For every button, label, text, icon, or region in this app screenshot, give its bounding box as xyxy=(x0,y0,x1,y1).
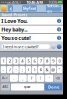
button[interactable]: 2 xyxy=(7,57,12,64)
button[interactable]: ) xyxy=(32,66,37,73)
staticText: 0 xyxy=(58,58,60,63)
staticText: ; xyxy=(22,67,23,72)
staticText: ‹ xyxy=(9,4,11,13)
staticText: 100% xyxy=(48,0,57,5)
staticText: 6 xyxy=(34,58,36,63)
button[interactable]: ⌫ xyxy=(54,75,62,82)
button[interactable]: ' xyxy=(45,75,53,82)
button[interactable]: 3 xyxy=(13,57,19,64)
staticText: ! xyxy=(40,76,41,81)
button[interactable]: " xyxy=(57,66,62,73)
button[interactable]: space xyxy=(11,83,44,90)
staticText: Done xyxy=(48,84,59,90)
button[interactable]: @ xyxy=(50,66,56,73)
staticText: - xyxy=(3,67,4,72)
staticText: 10:46 AM xyxy=(26,0,43,5)
staticText: ⌫ xyxy=(56,77,60,80)
button[interactable]: Settings xyxy=(46,5,63,11)
staticText: @ xyxy=(51,67,55,72)
button[interactable]: 1 xyxy=(1,57,6,64)
button[interactable]: ( xyxy=(26,66,31,73)
button[interactable]: / xyxy=(7,66,12,73)
staticText: Saved Presets xyxy=(1,12,27,17)
staticText: i xyxy=(59,35,60,40)
staticText: 4 xyxy=(21,58,23,63)
button[interactable]: 4 xyxy=(19,57,25,64)
button[interactable]: - xyxy=(1,66,6,73)
button[interactable]: #+= xyxy=(1,75,9,82)
staticText: / xyxy=(9,67,10,72)
staticText: Settings xyxy=(47,3,60,14)
button[interactable]: Done xyxy=(45,83,62,90)
button[interactable]: $ xyxy=(38,66,44,73)
staticText: . xyxy=(13,76,14,81)
staticText: 3 xyxy=(15,58,17,63)
staticText: ? xyxy=(30,76,32,81)
button[interactable]: ? xyxy=(27,75,36,82)
staticText: " xyxy=(58,67,60,72)
staticText: 5 xyxy=(27,58,29,63)
button[interactable]: You so cute! xyxy=(0,34,63,42)
staticText: 7 xyxy=(40,58,42,63)
staticText: 1 xyxy=(2,58,4,63)
staticText: •••oo AT&T xyxy=(1,0,21,5)
button[interactable]: ! xyxy=(36,75,44,82)
button[interactable]: ABC xyxy=(1,83,10,90)
button[interactable]: : xyxy=(13,66,19,73)
button[interactable]: Send xyxy=(57,44,62,49)
staticText: $ xyxy=(40,67,42,72)
staticText: ) xyxy=(34,67,35,72)
staticText: You so cute! xyxy=(1,34,31,41)
staticText: : xyxy=(15,67,16,72)
staticText: I need more cowbell! xyxy=(3,44,39,49)
button[interactable]: 5 xyxy=(26,57,31,64)
staticText: ( xyxy=(28,67,29,72)
staticText: 9 xyxy=(52,58,54,63)
staticText: , xyxy=(22,76,23,81)
staticText: ABC xyxy=(2,85,8,89)
staticText: 8 xyxy=(46,58,48,63)
staticText: & xyxy=(45,67,48,72)
button[interactable]: ; xyxy=(19,66,25,73)
button[interactable]: 9 xyxy=(50,57,56,64)
staticText: ' xyxy=(49,76,50,81)
button[interactable]: Attach xyxy=(51,44,56,49)
button[interactable]: Back xyxy=(7,5,13,11)
button[interactable]: . xyxy=(10,75,18,82)
button[interactable]: SkyText xyxy=(22,5,37,11)
button[interactable]: 8 xyxy=(44,57,50,64)
button[interactable]: 7 xyxy=(38,57,44,64)
button[interactable]: I Love You. xyxy=(0,17,63,25)
button[interactable]: Hey baby... xyxy=(0,25,63,33)
staticText: i xyxy=(59,18,60,23)
staticText: space xyxy=(24,85,31,89)
staticText: 2 xyxy=(9,58,11,63)
staticText: i xyxy=(59,27,60,32)
button[interactable]: 6 xyxy=(32,57,37,64)
button[interactable]: Compose xyxy=(0,5,7,11)
button[interactable]: , xyxy=(18,75,27,82)
staticText: #+= xyxy=(2,76,8,80)
button[interactable]: & xyxy=(44,66,50,73)
button[interactable]: 0 xyxy=(57,57,62,64)
staticText: Hey baby... xyxy=(1,26,27,33)
staticText: SkyText xyxy=(22,6,36,11)
staticText: I Love You. xyxy=(1,17,27,24)
